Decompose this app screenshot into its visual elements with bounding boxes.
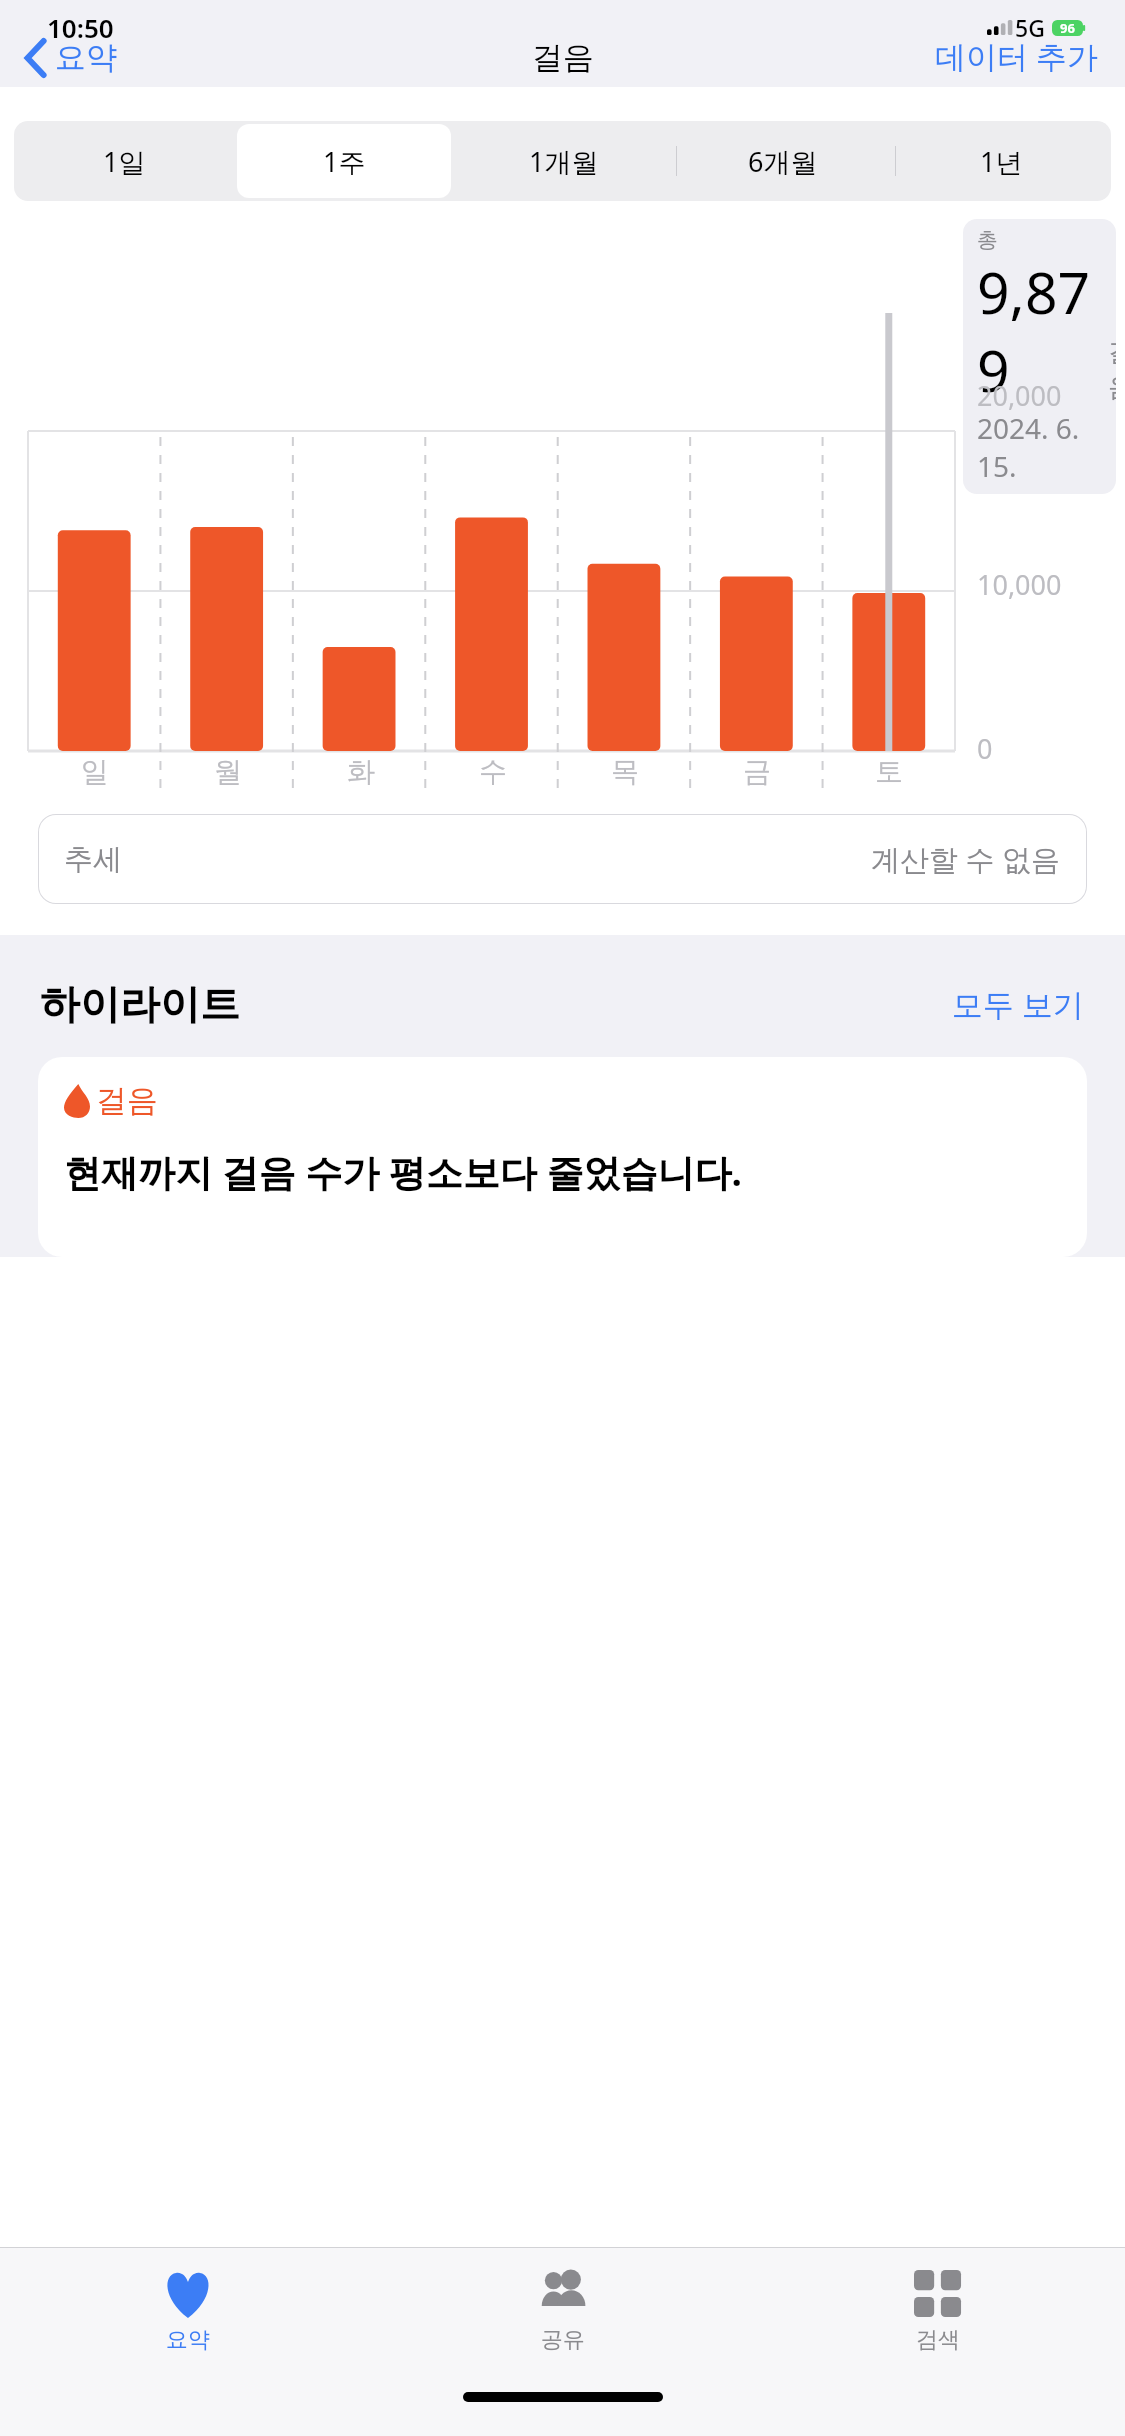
button[interactable]: 1일 [17, 124, 231, 198]
button[interactable]: 데이터 추가 [935, 35, 1099, 77]
staticText: 하이라이트 [40, 979, 240, 1029]
staticText: 20,000 [977, 377, 1062, 414]
staticText: 0 [977, 730, 993, 767]
button[interactable]: 추세 [38, 814, 1087, 904]
staticText: 금 [743, 754, 771, 789]
staticText: 1개월 [529, 143, 599, 180]
staticText: 1주 [323, 143, 366, 180]
staticText: 월 [214, 754, 242, 789]
button[interactable]: 공유 [375, 2248, 750, 2388]
button[interactable]: 모두 보기 [952, 983, 1085, 1025]
staticText: 6개월 [748, 143, 818, 180]
staticText: 요약 [55, 38, 117, 77]
staticText: 요약 [166, 2326, 210, 2354]
button[interactable]: 걸음 [38, 1057, 1087, 1257]
staticText: 10:50 [47, 10, 114, 45]
other: 검색 [914, 2270, 962, 2318]
button[interactable]: 요약 [0, 2248, 375, 2388]
staticText: 2024. 6. 15. [977, 409, 1108, 485]
staticText: 현재까지 걸음 수가 평소보다 줄었습니다. [64, 1146, 742, 1197]
button[interactable]: 1주 [237, 124, 451, 198]
button[interactable]: 요약 [22, 34, 121, 81]
staticText: 총 [977, 227, 998, 253]
staticText: 1일 [103, 143, 146, 180]
staticText: 1년 [980, 143, 1023, 180]
staticText: 걸음 [96, 1081, 158, 1120]
staticText: 걸음 [532, 38, 594, 77]
button[interactable]: 1개월 [457, 124, 670, 198]
other: 공유 [535, 2270, 591, 2318]
staticText: 계산할 수 없음 [871, 839, 1061, 879]
staticText: 96 [1060, 19, 1075, 37]
staticText: 9,879 [977, 253, 1108, 409]
staticText: 10,000 [977, 566, 1062, 603]
staticText: 일 [81, 754, 109, 789]
staticText: 검색 [916, 2326, 960, 2354]
button[interactable]: 1년 [895, 124, 1108, 198]
staticText: 목 [611, 754, 639, 789]
button[interactable]: 6개월 [676, 124, 889, 198]
staticText: 수 [479, 754, 507, 789]
staticText: 공유 [541, 2326, 585, 2354]
button[interactable]: 검색 [750, 2248, 1125, 2388]
staticText: 5G [1015, 12, 1045, 43]
other: 요약 [162, 2270, 214, 2318]
staticText: 추세 [64, 841, 122, 878]
staticText: 화 [347, 754, 375, 789]
staticText: 토 [875, 754, 903, 789]
